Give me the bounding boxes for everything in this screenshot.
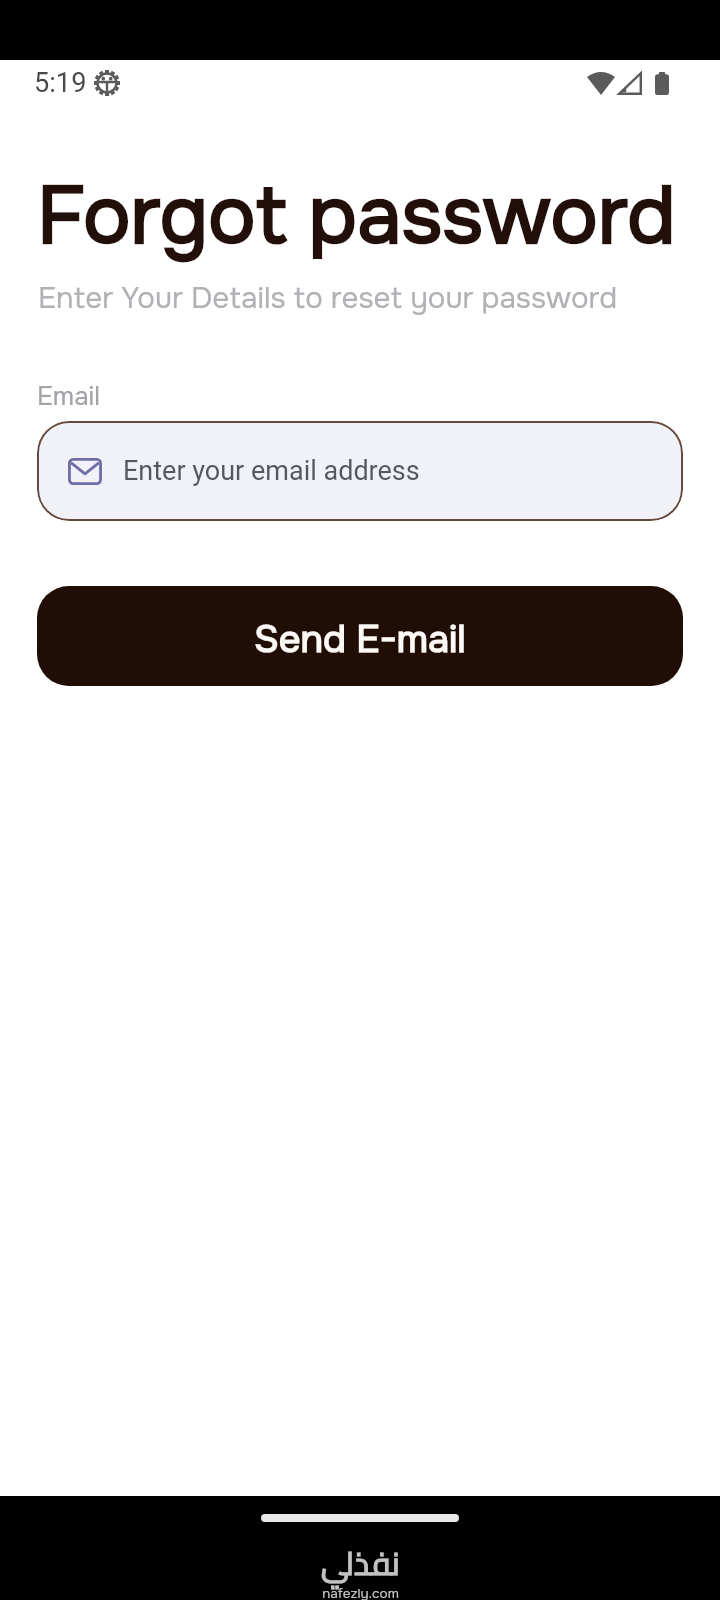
staticText: نفذلي — [321, 1533, 400, 1593]
staticText: 5:19 — [34, 67, 87, 99]
staticText: nafezly.com — [322, 1585, 399, 1600]
staticText: Email — [37, 380, 100, 413]
staticText: Send E-mail — [254, 615, 466, 663]
other: Battery — [655, 72, 669, 95]
button[interactable]: Send E-mail — [37, 586, 683, 686]
staticText: Enter your email address — [123, 455, 420, 487]
button[interactable]: Enter your email address — [37, 421, 683, 521]
other: Developer options — [94, 70, 120, 96]
other: Mobile signal — [618, 72, 642, 95]
staticText: Enter Your Details to reset your passwor… — [38, 279, 618, 317]
other: Wi-Fi — [587, 72, 615, 95]
staticText: Forgot password — [37, 165, 676, 267]
